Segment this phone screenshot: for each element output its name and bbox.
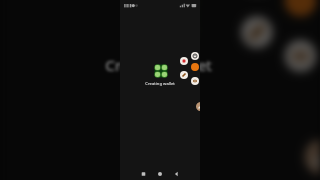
button[interactable]: Timer (191, 52, 199, 60)
staticText: Creating wallet (145, 81, 175, 87)
button[interactable]: Stop recording (180, 57, 188, 65)
button[interactable]: Draw (180, 71, 188, 79)
button[interactable]: Back (173, 164, 200, 180)
button[interactable]: Home (146, 164, 173, 180)
button[interactable]: Recording (191, 63, 199, 71)
button[interactable]: Recents (120, 164, 146, 180)
button[interactable]: Camera (191, 77, 199, 85)
button[interactable]: Marker (196, 102, 200, 111)
staticText: Creating wallet (105, 55, 212, 76)
